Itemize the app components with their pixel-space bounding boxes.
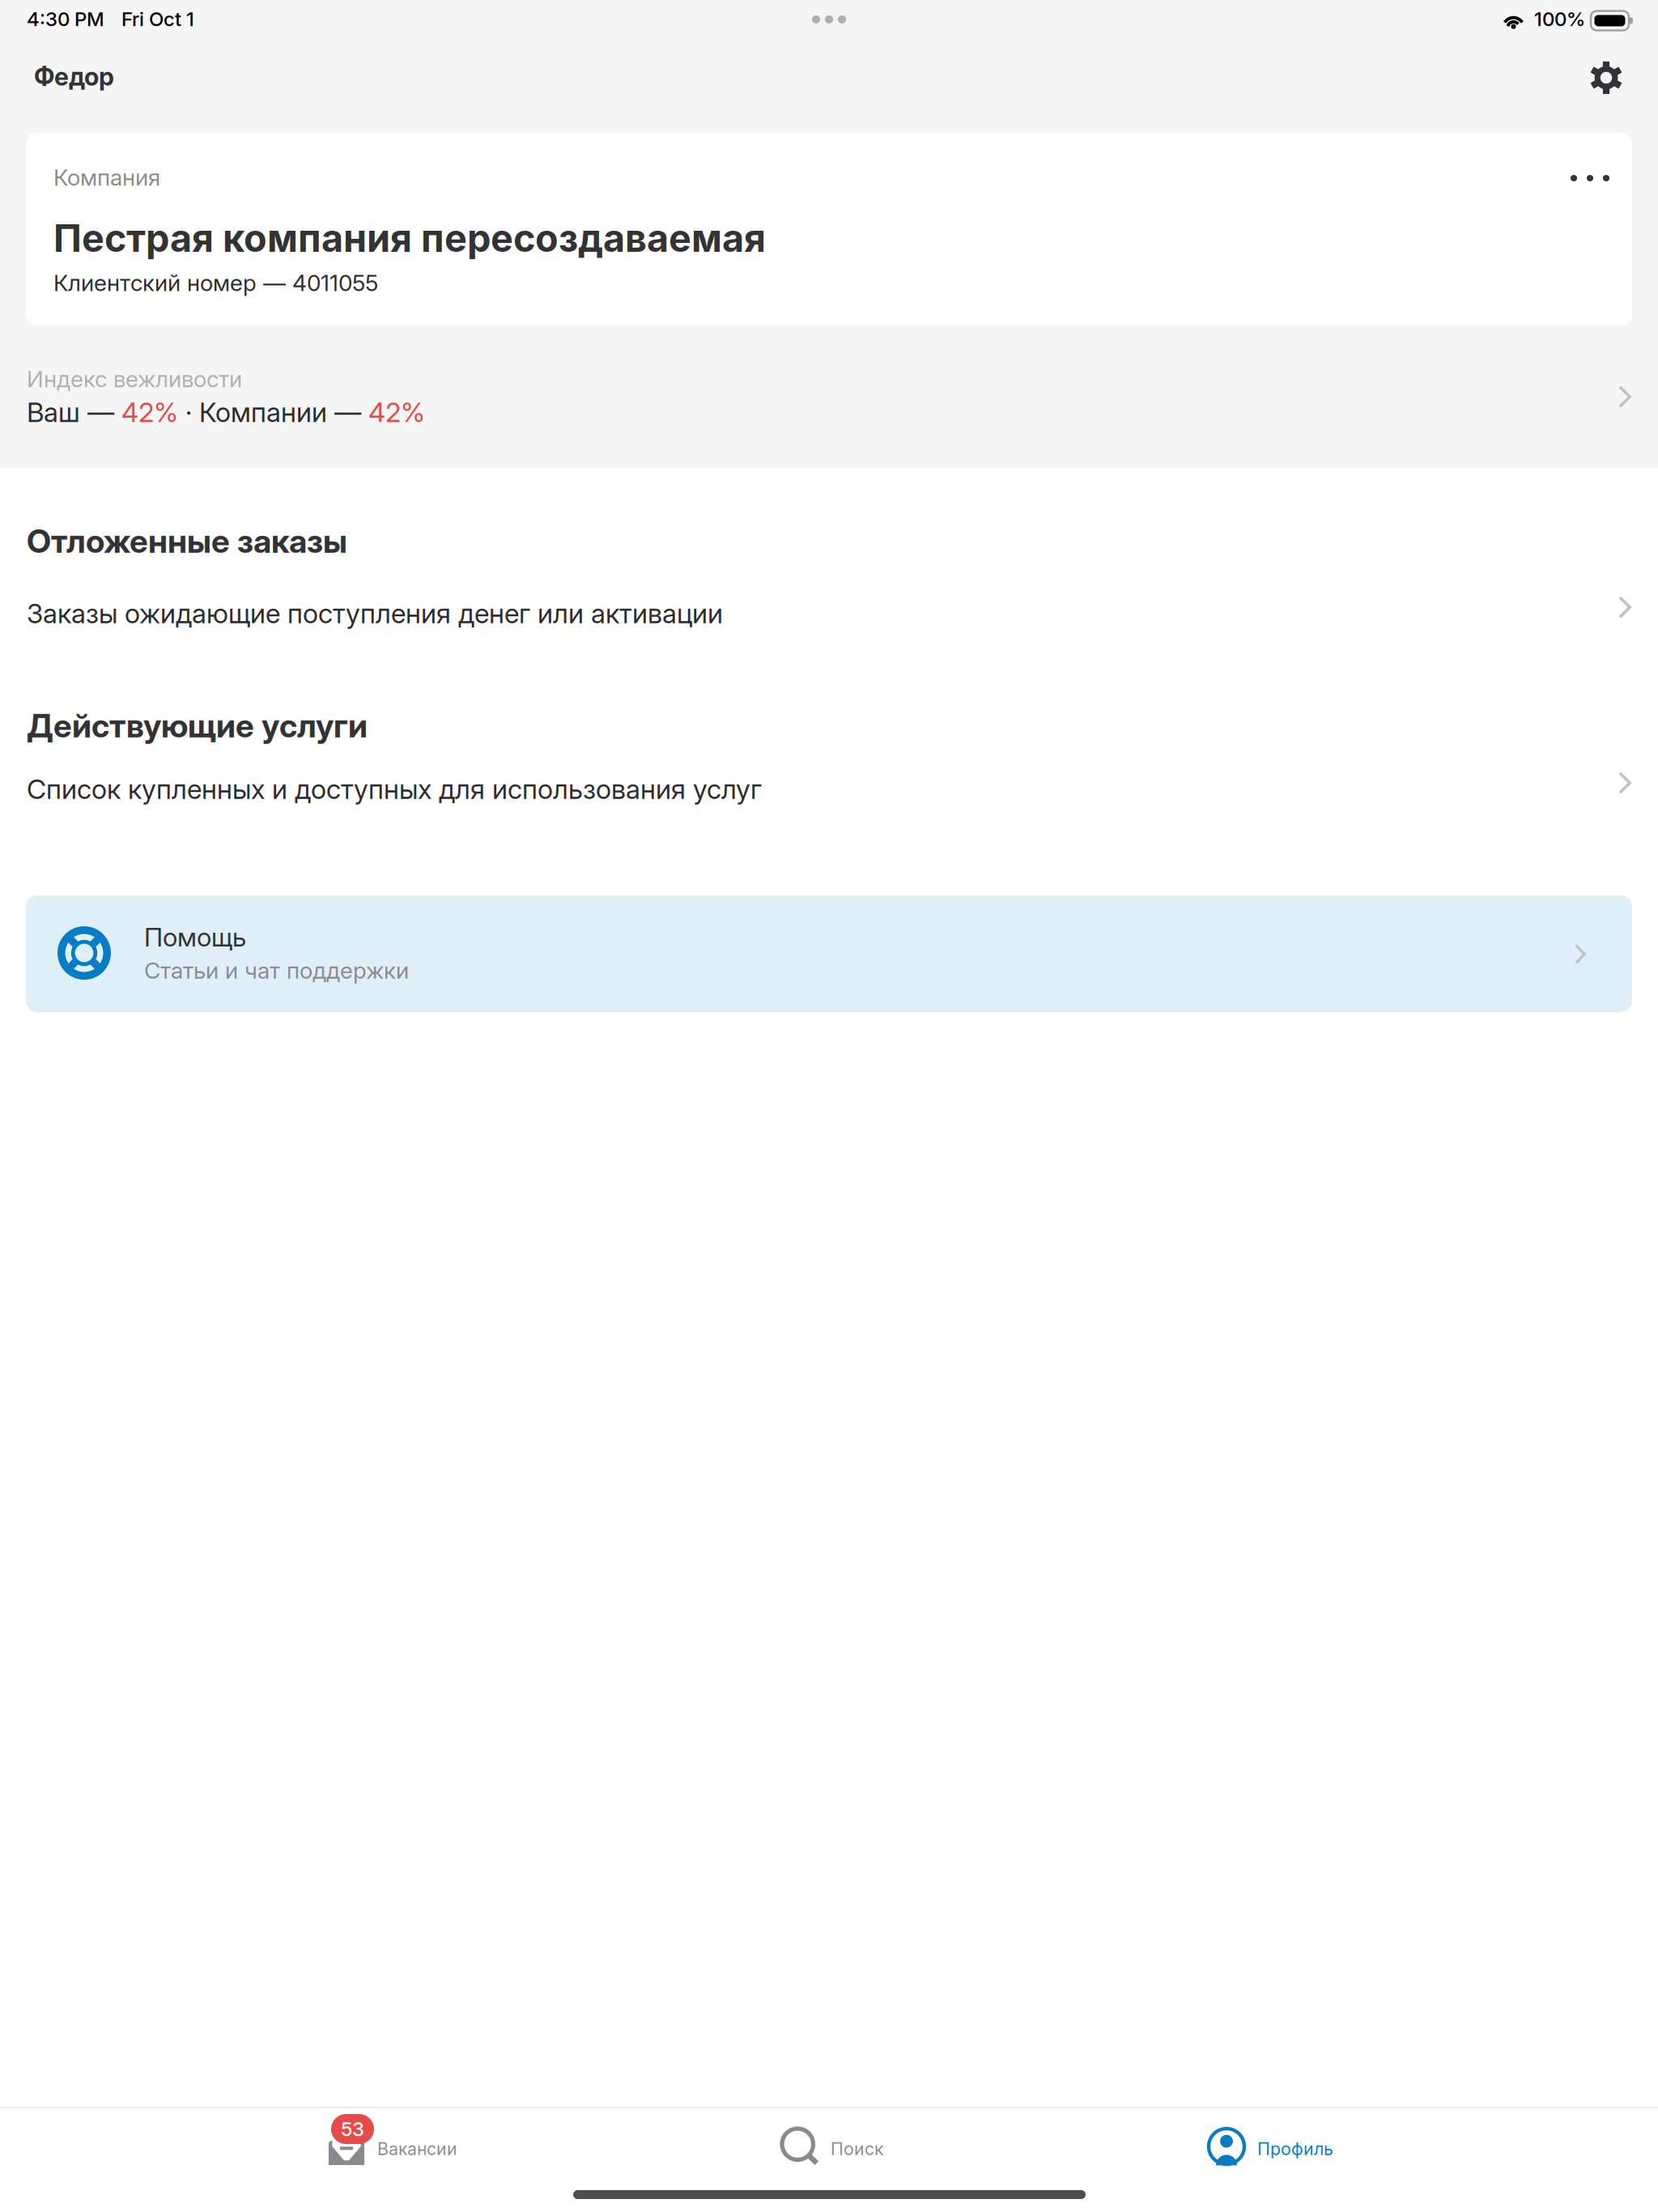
staticText: Индекс вежливости — [27, 365, 242, 393]
staticText: 4:30 PM — [27, 7, 104, 31]
staticText: Профиль — [1257, 2138, 1333, 2159]
staticText: Fri Oct 1 — [121, 7, 194, 31]
staticText: Клиентский номер — 4011055 — [53, 269, 378, 296]
staticText: Вакансии — [377, 2138, 457, 2159]
staticText: Статьи и чат поддержки — [144, 957, 409, 984]
staticText: 53 — [341, 2117, 364, 2141]
button[interactable]: Помощь — [26, 895, 1632, 1012]
staticText: Помощь — [144, 921, 246, 953]
staticText: Поиск — [831, 2138, 883, 2159]
button[interactable]: Поиск — [552, 2107, 1105, 2188]
staticText: Федор — [34, 62, 114, 92]
staticText: Список купленных и доступных для использ… — [27, 773, 762, 805]
button[interactable]: Индекс вежливости — [0, 365, 1658, 468]
staticText: Заказы ожидающие поступления денег или а… — [27, 597, 723, 630]
staticText: 42% — [368, 396, 425, 428]
button[interactable]: Компания — [26, 133, 1632, 325]
button[interactable]: Настройки — [1572, 58, 1640, 97]
staticText: 100% — [1534, 7, 1585, 31]
staticText: Действующие услуги — [27, 706, 368, 745]
staticText: 42% — [121, 396, 178, 428]
button[interactable]: Действующие услуги — [27, 706, 1631, 827]
staticText: Отложенные заказы — [27, 521, 347, 561]
staticText: Компания — [53, 164, 160, 191]
button[interactable]: 53 — [0, 2107, 552, 2188]
staticText: · Компании — — [178, 396, 368, 428]
button[interactable]: Отложенные заказы — [27, 521, 1631, 643]
button[interactable]: Профиль — [1105, 2107, 1658, 2188]
staticText: Ваш — — [27, 396, 121, 428]
staticText: Пестрая компания пересоздаваемая — [53, 215, 766, 261]
